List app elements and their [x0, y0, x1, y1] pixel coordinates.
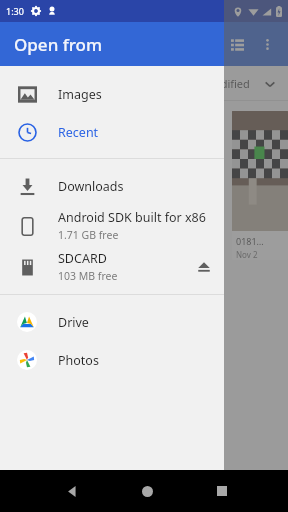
button[interactable]: Back — [56, 475, 88, 507]
staticText: Downloads — [58, 178, 124, 195]
staticText: Recent — [58, 124, 99, 141]
staticText: 103 MB free — [58, 269, 118, 283]
staticText: Photos — [58, 352, 99, 369]
staticText: Nov 2 — [236, 249, 258, 260]
button[interactable]: Home — [131, 475, 163, 507]
button[interactable]: SDCARD — [0, 246, 224, 287]
staticText: 0181… — [236, 235, 264, 247]
button[interactable]: More options — [254, 31, 280, 57]
staticText: Modified — [204, 76, 250, 91]
button[interactable]: Images — [0, 75, 224, 113]
staticText: SDCARD — [58, 250, 107, 267]
button[interactable]: Android SDK built for x86 — [0, 205, 224, 246]
button[interactable]: Recent apps — [206, 475, 238, 507]
staticText: Android SDK built for x86 — [58, 209, 206, 226]
staticText: Open from — [14, 33, 103, 56]
button[interactable]: Recent — [0, 113, 224, 151]
staticText: 1.71 GB free — [58, 228, 119, 242]
staticText: 1:30 — [6, 5, 24, 17]
staticText: Images — [58, 86, 102, 103]
button[interactable]: Drive — [0, 303, 224, 341]
button[interactable]: Downloads — [0, 167, 224, 205]
button[interactable]: Eject SD card — [195, 258, 213, 276]
button[interactable]: List view — [224, 31, 250, 57]
staticText: Drive — [58, 314, 89, 331]
button[interactable]: Photos — [0, 341, 224, 379]
